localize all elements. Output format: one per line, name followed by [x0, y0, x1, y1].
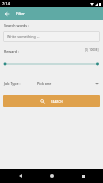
staticText: Search words :	[4, 23, 29, 28]
staticText: Write something ...	[7, 34, 40, 39]
staticText: Reward :	[4, 49, 19, 54]
button[interactable]: Home	[41, 169, 63, 183]
staticText: Pick one	[37, 81, 52, 86]
staticText: 7:14	[2, 1, 10, 6]
button[interactable]: SEARCH	[3, 95, 100, 107]
button[interactable]: Pick one	[37, 78, 99, 89]
staticText: Job Type :	[4, 81, 21, 86]
button[interactable]: Reward range	[0, 59, 103, 69]
button[interactable]: Write something ...	[3, 31, 100, 42]
staticText: Filter	[16, 11, 25, 16]
button[interactable]: Recents	[72, 169, 94, 183]
staticText: [0, 1000$]	[85, 48, 99, 52]
staticText: SEARCH	[51, 100, 63, 104]
button[interactable]: Back	[1, 7, 12, 20]
button[interactable]: Back	[9, 169, 31, 183]
